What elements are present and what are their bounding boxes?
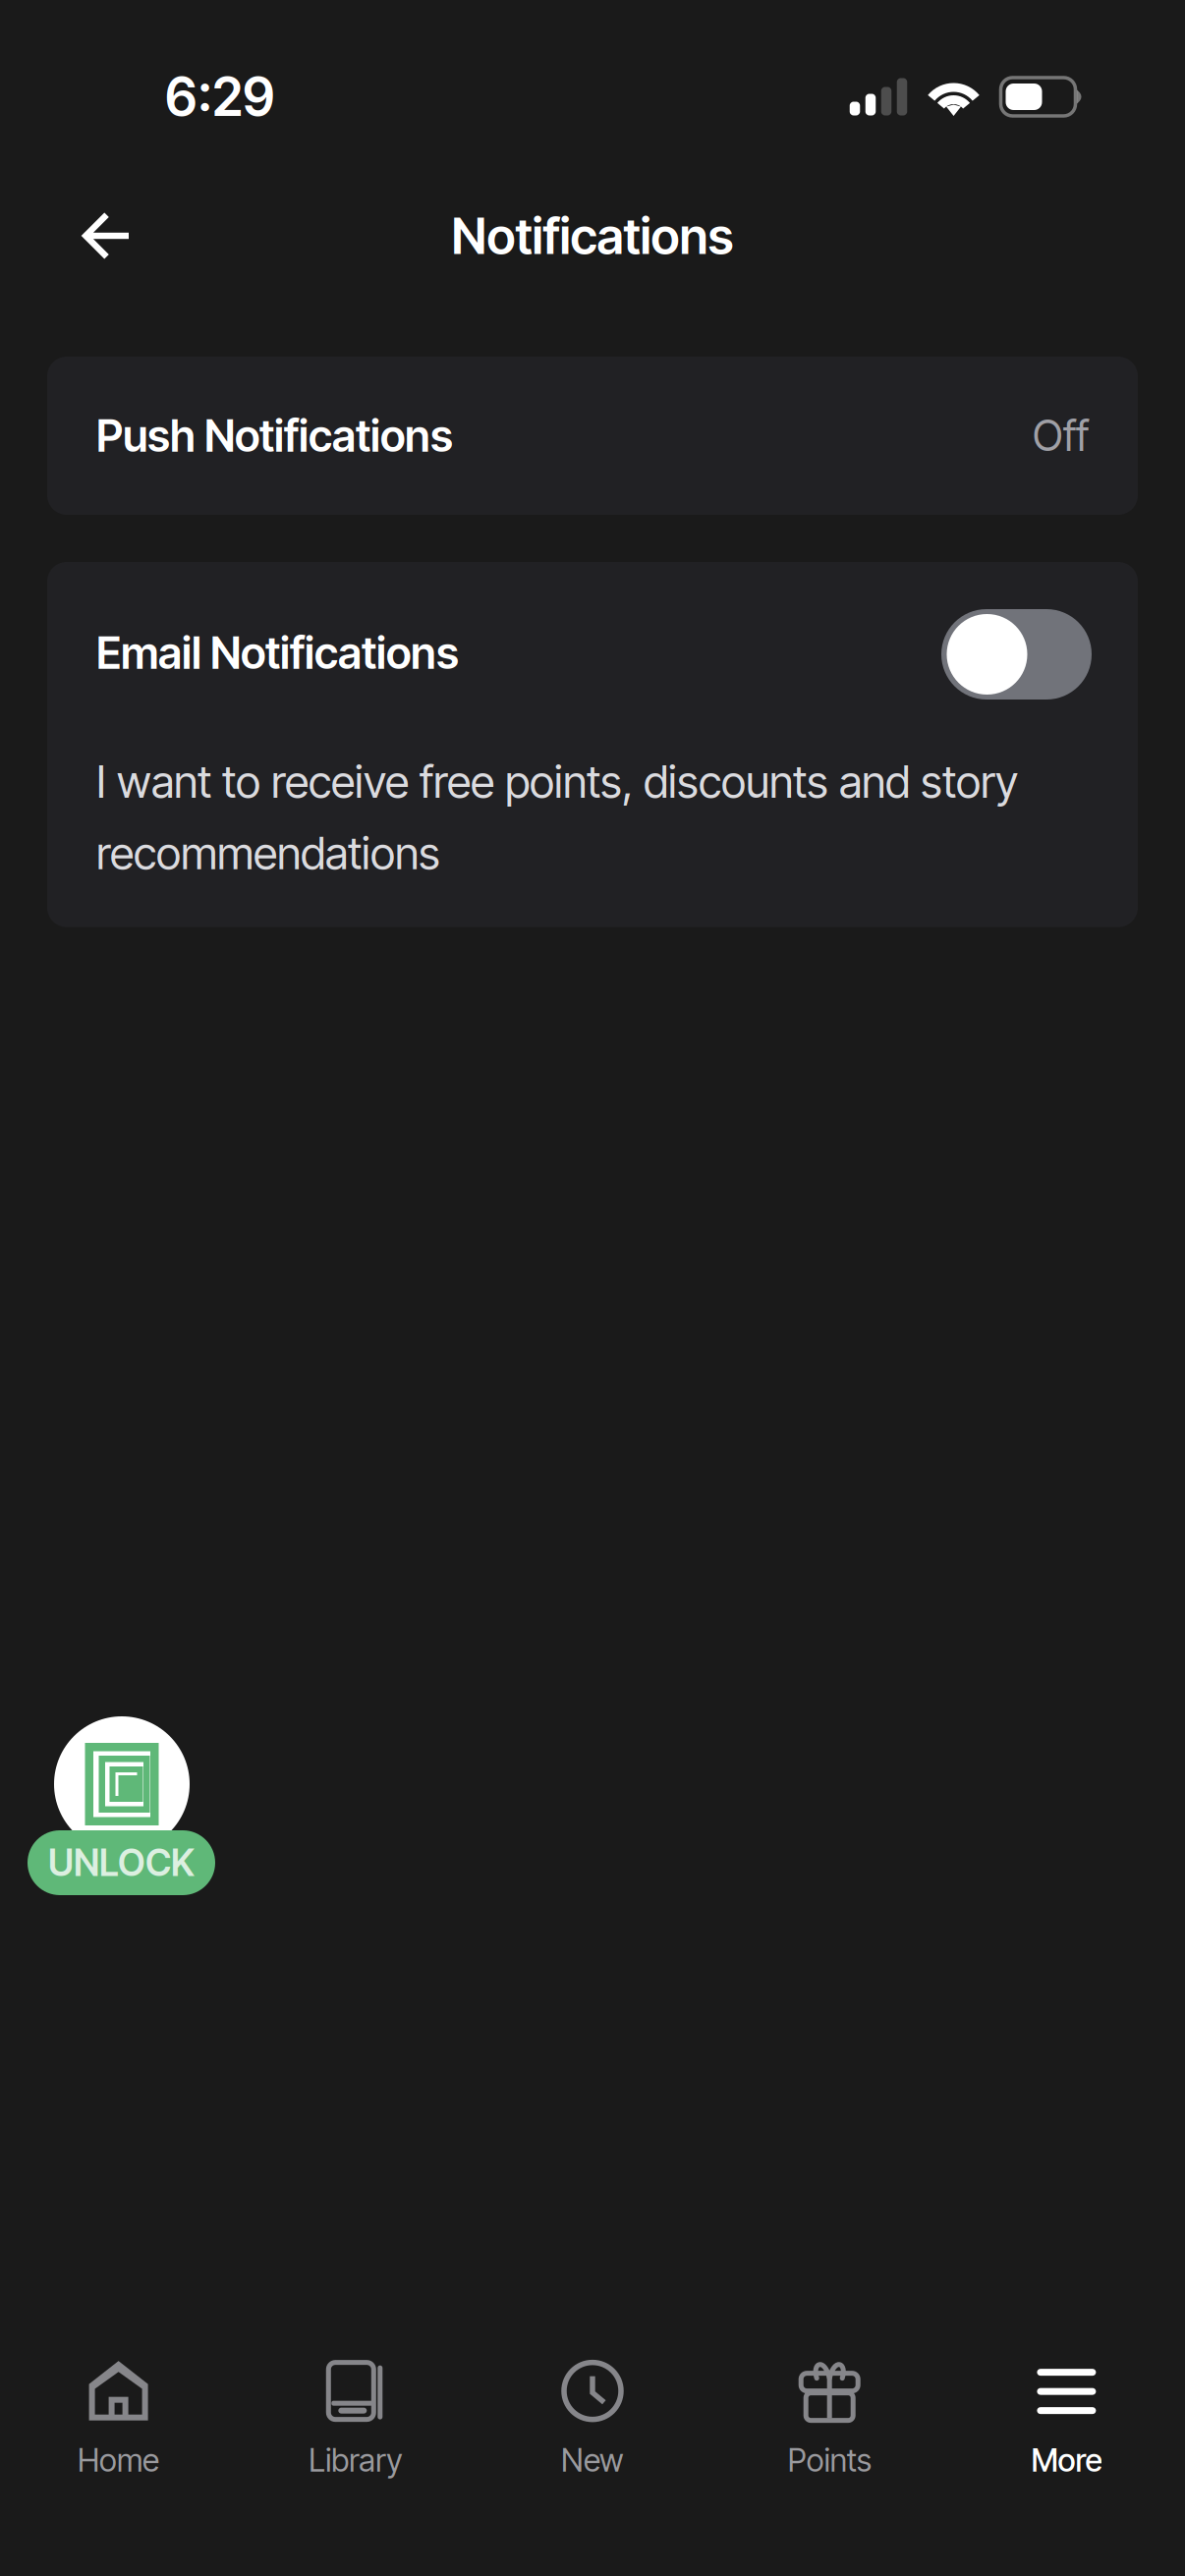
- button[interactable]: Library: [237, 2321, 474, 2478]
- staticText: More: [1031, 2441, 1102, 2479]
- button[interactable]: Home: [0, 2321, 237, 2478]
- staticText: Notifications: [451, 206, 734, 266]
- staticText: recommendations: [96, 826, 440, 880]
- staticText: New: [561, 2441, 624, 2479]
- button[interactable]: Unlock reward: [28, 1716, 243, 1895]
- staticText: UNLOCK: [48, 1841, 195, 1885]
- staticText: 6:29: [165, 65, 275, 128]
- button[interactable]: More: [948, 2321, 1185, 2478]
- staticText: Home: [78, 2441, 159, 2479]
- staticText: Email Notifications: [96, 626, 459, 679]
- staticText: Library: [309, 2441, 402, 2479]
- staticText: Push Notifications: [96, 409, 453, 462]
- staticText: Points: [788, 2441, 871, 2479]
- button[interactable]: Points: [711, 2321, 948, 2478]
- button[interactable]: Push Notifications: [47, 357, 1138, 515]
- button[interactable]: Back: [48, 182, 166, 290]
- staticText: Off: [1033, 410, 1089, 461]
- button[interactable]: Email Notifications: [941, 606, 1092, 700]
- staticText: I want to receive free points, discounts…: [96, 755, 1018, 808]
- button[interactable]: New: [474, 2321, 711, 2478]
